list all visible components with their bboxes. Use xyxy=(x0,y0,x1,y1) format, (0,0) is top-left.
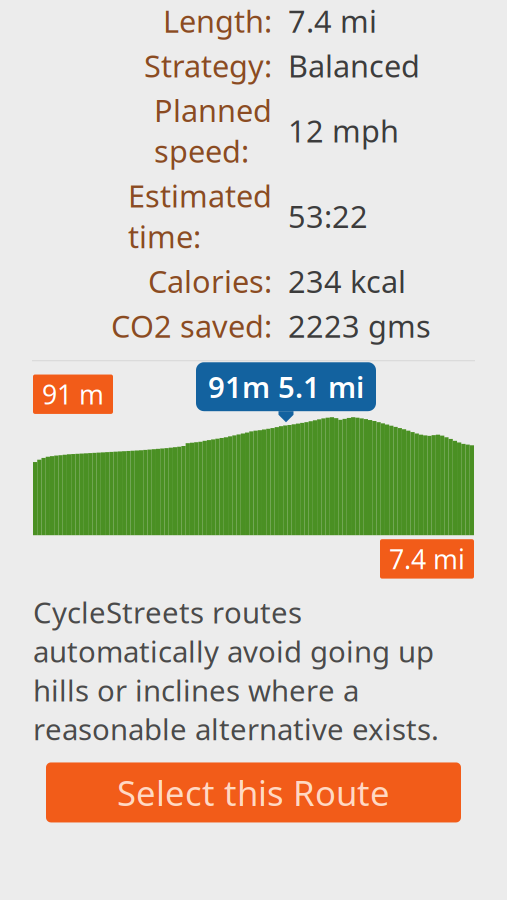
staticText: 91 m xyxy=(42,376,104,412)
staticText: CO2 saved: xyxy=(111,305,272,346)
staticText: Select this Route xyxy=(117,769,390,815)
button[interactable]: Select this Route xyxy=(46,762,461,822)
staticText: CycleStreets routes automatically avoid … xyxy=(33,593,439,748)
staticText: 7.4 mi xyxy=(288,0,377,41)
staticText: Balanced xyxy=(288,45,420,86)
staticText: Calories: xyxy=(148,261,272,301)
staticText: 2223 gms xyxy=(288,305,431,346)
staticText: Planned speed: xyxy=(154,90,272,171)
staticText: Strategy: xyxy=(144,45,272,86)
staticText: 7.4 mi xyxy=(389,541,465,577)
staticText: 12 mph xyxy=(288,110,399,151)
staticText: 53:22 xyxy=(288,196,368,236)
staticText: Estimated time: xyxy=(128,175,272,257)
staticText: Length: xyxy=(163,0,272,41)
staticText: 234 kcal xyxy=(288,261,406,301)
staticText: 91m 5.1 mi xyxy=(208,367,364,406)
